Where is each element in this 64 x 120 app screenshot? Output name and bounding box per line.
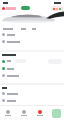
- button[interactable]: [0, 72, 64, 79]
- button[interactable]: Window controls: [51, 6, 63, 11]
- button[interactable]: [0, 90, 64, 97]
- button[interactable]: Tab 4: [48, 106, 64, 120]
- button[interactable]: [0, 97, 64, 104]
- button[interactable]: [0, 31, 64, 38]
- button[interactable]: Tab 1: [0, 106, 16, 120]
- button[interactable]: Tab 3: [32, 106, 48, 120]
- button[interactable]: [0, 38, 64, 45]
- button[interactable]: [0, 57, 64, 65]
- button[interactable]: Primary action: [21, 6, 30, 10]
- button[interactable]: Tab 2: [16, 106, 32, 120]
- button[interactable]: [0, 65, 64, 72]
